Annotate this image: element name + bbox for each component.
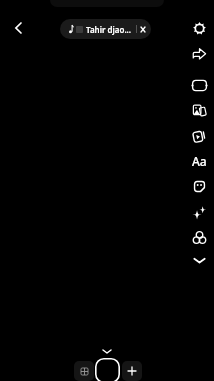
button[interactable]: Settings (186, 15, 212, 41)
button[interactable]: Back (4, 14, 32, 42)
button[interactable]: Layout (186, 97, 212, 123)
button[interactable]: Boomerang (186, 72, 212, 98)
button[interactable]: Collapse (96, 343, 118, 360)
button[interactable]: Tahir djao... (60, 19, 151, 39)
button[interactable]: More (186, 247, 212, 273)
button[interactable]: Clips (186, 123, 212, 149)
button[interactable]: Capture (95, 358, 120, 381)
staticText: Aa (192, 153, 207, 169)
button[interactable]: Add (122, 361, 142, 381)
button[interactable]: Share (186, 41, 212, 67)
button[interactable]: Filters (186, 224, 212, 250)
staticText: Tahir djao... (86, 24, 132, 35)
button[interactable]: Gallery (74, 361, 94, 381)
button[interactable]: Text (186, 148, 212, 174)
button[interactable]: Stickers (186, 173, 212, 199)
button[interactable]: Effects (186, 199, 212, 225)
